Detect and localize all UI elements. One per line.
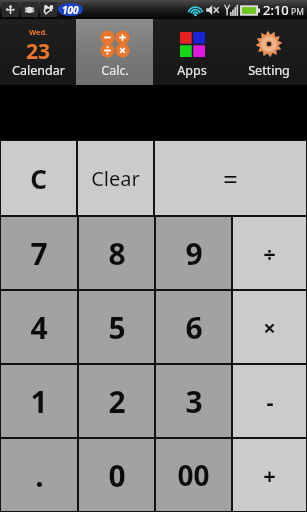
staticText: 0: [108, 455, 126, 496]
button[interactable]: 7: [1, 217, 77, 289]
button[interactable]: 2: [79, 365, 154, 437]
button[interactable]: Setting: [230, 19, 307, 85]
staticText: Apps: [177, 62, 207, 79]
staticText: Calendar: [12, 62, 65, 79]
button[interactable]: Wed.: [0, 19, 76, 85]
button[interactable]: 00: [156, 439, 231, 511]
staticText: Wed.: [29, 27, 48, 37]
staticText: +: [263, 460, 276, 490]
staticText: 4: [30, 307, 48, 348]
staticText: C: [30, 161, 47, 196]
button[interactable]: 0: [79, 439, 154, 511]
staticText: Setting: [248, 62, 290, 79]
button[interactable]: 1: [1, 365, 77, 437]
staticText: -: [266, 386, 274, 416]
button[interactable]: Calc.: [76, 19, 153, 85]
staticText: 5: [108, 307, 126, 348]
button[interactable]: .: [1, 439, 77, 511]
staticText: ×: [263, 312, 276, 342]
button[interactable]: =: [155, 141, 306, 215]
button[interactable]: 3: [156, 365, 231, 437]
button[interactable]: 4: [1, 291, 77, 363]
staticText: Calc.: [101, 62, 129, 79]
staticText: 1: [30, 381, 48, 422]
button[interactable]: +: [233, 439, 306, 511]
button[interactable]: Apps: [153, 19, 230, 85]
staticText: 7: [30, 233, 48, 274]
button[interactable]: 6: [156, 291, 231, 363]
staticText: 8: [108, 233, 126, 274]
staticText: 23: [26, 37, 51, 61]
staticText: PM: [291, 6, 304, 18]
staticText: Clear: [91, 165, 140, 192]
staticText: .: [35, 455, 44, 496]
staticText: 3: [185, 381, 203, 422]
staticText: 100: [62, 3, 79, 17]
staticText: 2:10: [263, 1, 289, 19]
staticText: =: [223, 161, 238, 196]
button[interactable]: 8: [79, 217, 154, 289]
button[interactable]: ÷: [233, 217, 306, 289]
staticText: ÷: [263, 238, 276, 268]
button[interactable]: -: [233, 365, 306, 437]
button[interactable]: C: [1, 141, 76, 215]
button[interactable]: ×: [233, 291, 306, 363]
staticText: 6: [185, 307, 203, 348]
staticText: 00: [177, 456, 210, 494]
staticText: 2: [108, 381, 126, 422]
button[interactable]: Clear: [78, 141, 153, 215]
button[interactable]: 9: [156, 217, 231, 289]
button[interactable]: 5: [79, 291, 154, 363]
staticText: 9: [185, 233, 203, 274]
